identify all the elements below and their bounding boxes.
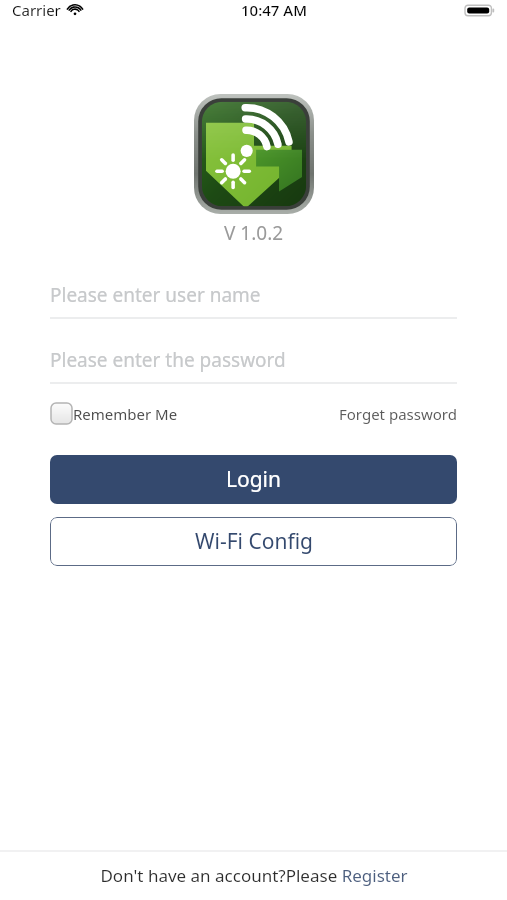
button[interactable]: Forget password	[339, 404, 457, 424]
button[interactable]: Please enter the password	[50, 343, 457, 384]
button[interactable]: Login	[50, 455, 457, 504]
staticText: Forget password	[339, 404, 457, 424]
button[interactable]: Please enter user name	[50, 278, 457, 319]
button[interactable]: Remember Me checkbox	[50, 402, 178, 425]
other: Remember Me checkbox	[50, 402, 73, 425]
other: App logo	[194, 94, 314, 214]
staticText: Don't have an account?Please Register	[100, 864, 408, 887]
button[interactable]: Wi-Fi Config	[50, 517, 457, 566]
staticText: Wi-Fi Config	[195, 527, 313, 556]
staticText: V 1.0.2	[224, 220, 284, 246]
button[interactable]: Don't have an account?Please Register	[0, 851, 507, 900]
staticText: Carrier	[12, 0, 61, 20]
staticText: Please enter user name	[50, 282, 261, 308]
staticText: Please enter the password	[50, 347, 286, 373]
staticText: Remember Me	[73, 404, 178, 424]
staticText: Login	[226, 465, 282, 494]
staticText: 10:47 AM	[241, 0, 307, 20]
